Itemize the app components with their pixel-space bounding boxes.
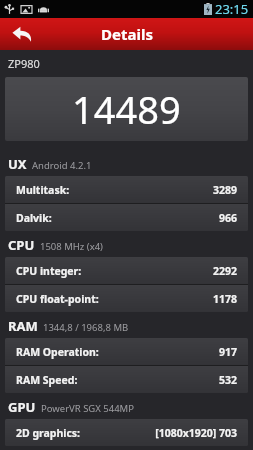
staticText: 1178 bbox=[212, 292, 237, 306]
button[interactable]: CPU float-point: bbox=[5, 285, 248, 312]
staticText: 23:15 bbox=[215, 0, 249, 18]
button[interactable]: 2D graphics: bbox=[5, 419, 248, 446]
staticText: PowerVR SGX 544MP bbox=[41, 402, 134, 415]
button[interactable]: RAM Speed: bbox=[5, 366, 248, 393]
staticText: 532 bbox=[218, 373, 237, 387]
staticText: CPU float-point: bbox=[16, 292, 99, 306]
button[interactable]: RAM Operation: bbox=[5, 338, 248, 365]
staticText: 2292 bbox=[212, 264, 237, 278]
staticText: [1080x1920] 703 bbox=[155, 426, 237, 440]
staticText: 3289 bbox=[212, 183, 237, 197]
button[interactable]: Back bbox=[0, 18, 44, 50]
staticText: 966 bbox=[218, 211, 237, 225]
staticText: 1344,8 / 1968,8 MB bbox=[43, 321, 129, 334]
staticText: Multitask: bbox=[16, 183, 70, 197]
staticText: Android 4.2.1 bbox=[32, 159, 92, 172]
staticText: 1508 MHz (x4) bbox=[40, 240, 103, 253]
staticText: ZP980 bbox=[8, 56, 40, 71]
staticText: RAM bbox=[8, 317, 38, 335]
staticText: GPU bbox=[8, 398, 36, 416]
staticText: Dalvik: bbox=[16, 211, 52, 225]
staticText: 2D graphics: bbox=[16, 426, 81, 440]
staticText: RAM Operation: bbox=[16, 345, 99, 359]
button[interactable]: CPU integer: bbox=[5, 257, 248, 284]
staticText: 917 bbox=[218, 345, 237, 359]
staticText: CPU integer: bbox=[16, 264, 82, 278]
staticText: RAM Speed: bbox=[16, 373, 78, 387]
staticText: UX bbox=[8, 155, 27, 173]
staticText: Details bbox=[101, 24, 153, 44]
button[interactable]: Dalvik: bbox=[5, 204, 248, 231]
staticText: 14489 bbox=[72, 83, 181, 135]
button[interactable]: 14489 bbox=[5, 77, 248, 141]
staticText: CPU bbox=[8, 236, 35, 254]
button[interactable]: Multitask: bbox=[5, 176, 248, 203]
